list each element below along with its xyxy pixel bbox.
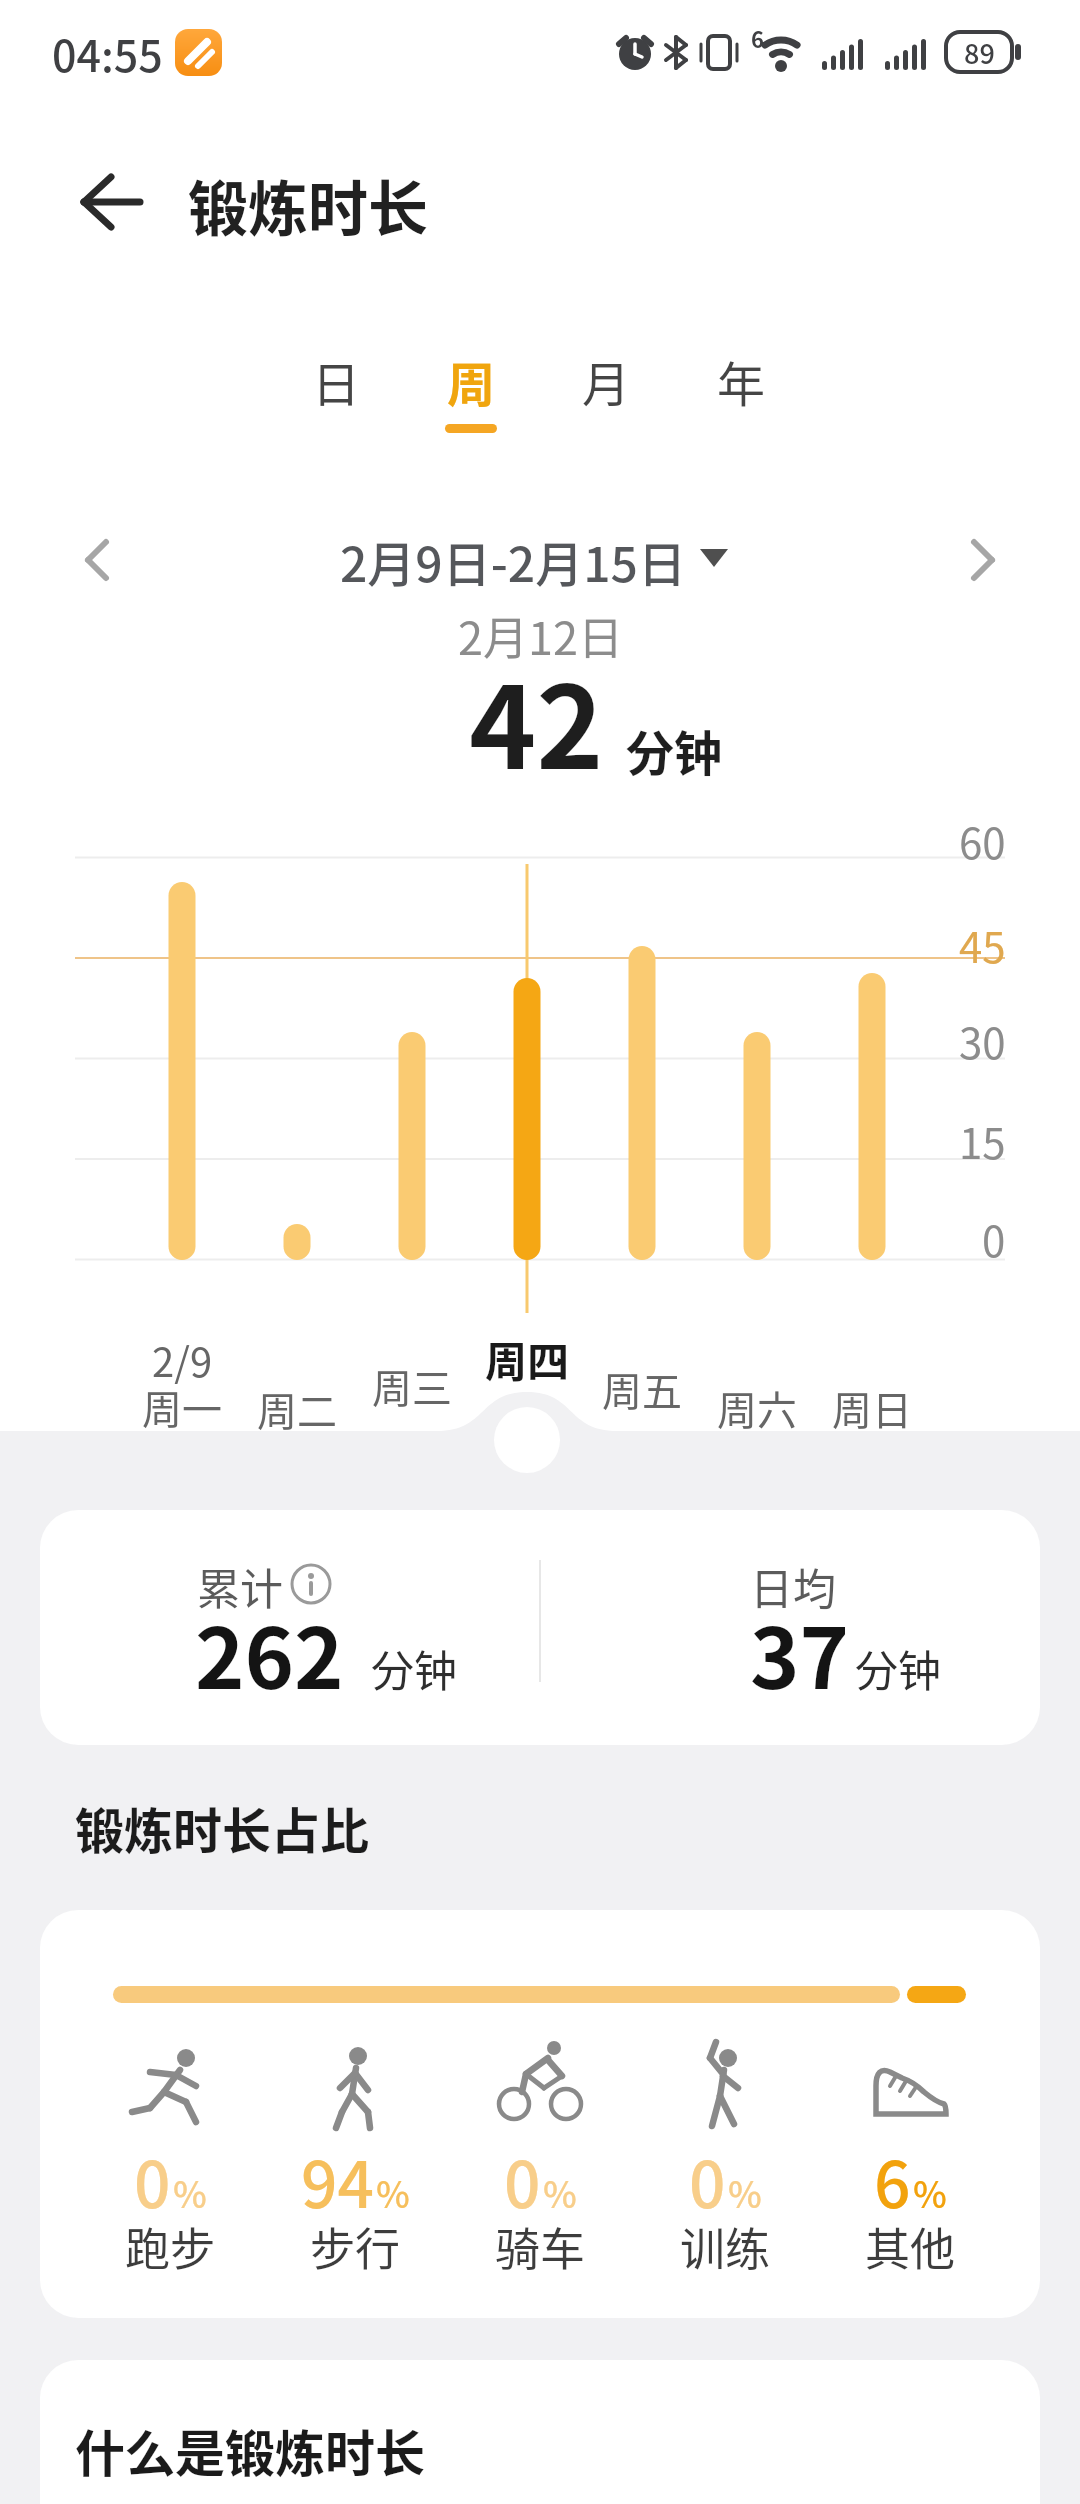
staticText: 日 (312, 346, 361, 416)
staticText: 分钟 (626, 715, 723, 785)
button[interactable] (60, 524, 136, 600)
staticText: 什么是锻炼时长 (75, 2414, 425, 2486)
button[interactable] (494, 1407, 560, 1473)
staticText: 2/9 (152, 1331, 213, 1389)
staticText: 0 (134, 2134, 171, 2227)
button[interactable] (60, 160, 160, 250)
staticText: 周 (447, 346, 496, 416)
staticText: % (728, 2166, 762, 2218)
staticText: 分钟 (855, 1637, 941, 1699)
button[interactable]: 年 (680, 323, 802, 438)
staticText: 跑步 (125, 2214, 216, 2279)
staticText: 0 (982, 1208, 1006, 1269)
staticText: 月 (582, 346, 631, 416)
staticText: % (913, 2166, 947, 2218)
staticText: 其他 (865, 2214, 956, 2279)
button[interactable]: 月 (545, 323, 667, 438)
staticText: 0 (504, 2134, 541, 2227)
staticText: 周一 (142, 1378, 222, 1436)
staticText: 2月12日 (458, 603, 623, 668)
staticText: 2月9日-2月15日 (340, 526, 686, 596)
staticText: 45 (959, 914, 1006, 975)
staticText: 94 (301, 2134, 374, 2227)
button[interactable]: 2月9日-2月15日 (171, 503, 855, 618)
staticText: 训练 (680, 2214, 771, 2279)
staticText: 步行 (310, 2214, 401, 2279)
staticText: 37 (750, 1592, 850, 1714)
staticText: 04:55 (52, 22, 163, 84)
button[interactable]: 周 (410, 323, 532, 438)
staticText: 262 (195, 1592, 344, 1714)
staticText: 分钟 (371, 1637, 457, 1699)
staticText: 6 (751, 22, 764, 54)
staticText: 60 (959, 810, 1006, 871)
staticText: 周四 (485, 1328, 570, 1389)
staticText: 周三 (372, 1357, 452, 1415)
staticText: 周六 (717, 1379, 797, 1437)
staticText: 42 (469, 637, 604, 797)
button[interactable]: 日 (275, 323, 397, 438)
staticText: 累计 (197, 1555, 283, 1617)
staticText: % (543, 2166, 577, 2218)
staticText: 15 (959, 1110, 1006, 1171)
staticText: 周日 (832, 1379, 912, 1437)
button[interactable] (944, 524, 1020, 600)
staticText: 锻炼时长占比 (75, 1792, 370, 1863)
staticText: 89 (964, 33, 995, 72)
staticText: % (376, 2166, 410, 2218)
staticText: 年 (717, 346, 766, 416)
staticText: 锻炼时长 (188, 161, 428, 248)
staticText: % (173, 2166, 207, 2218)
button[interactable] (285, 1558, 337, 1610)
staticText: 日均 (750, 1555, 836, 1617)
staticText: 6 (874, 2134, 911, 2227)
staticText: 骑车 (495, 2214, 586, 2279)
staticText: 0 (689, 2134, 726, 2227)
staticText: 30 (959, 1010, 1006, 1071)
staticText: 周二 (257, 1380, 337, 1438)
staticText: 周五 (602, 1360, 682, 1418)
